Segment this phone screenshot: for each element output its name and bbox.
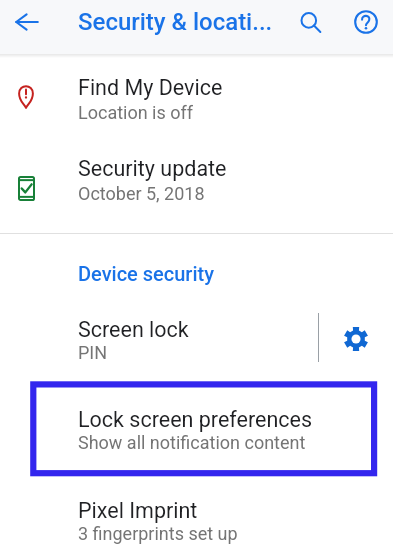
button[interactable]: Help (344, 0, 388, 44)
button[interactable]: Pixel Imprint (0, 480, 393, 552)
staticText: 3 fingerprints set up (78, 523, 238, 544)
button[interactable]: Search (289, 1, 333, 45)
staticText: Security & locati... (78, 8, 273, 36)
staticText: Pixel Imprint (78, 498, 198, 523)
staticText: Lock screen preferences (78, 407, 313, 432)
staticText: Location is off (78, 102, 194, 123)
button[interactable]: Lock screen preferences (0, 388, 393, 464)
button[interactable]: Find My Device (0, 56, 393, 128)
button[interactable]: Screen lock settings (323, 309, 389, 369)
staticText: Device security (78, 262, 214, 285)
staticText: Show all notification content (78, 432, 306, 453)
staticText: Find My Device (78, 75, 223, 100)
staticText: October 5, 2018 (78, 183, 205, 204)
button[interactable]: Screen lock (0, 300, 318, 364)
staticText: Screen lock (78, 317, 189, 342)
button[interactable]: Back (3, 0, 51, 46)
staticText: Security update (78, 156, 227, 181)
staticText: PIN (78, 342, 108, 363)
button[interactable]: Security update (0, 138, 393, 210)
